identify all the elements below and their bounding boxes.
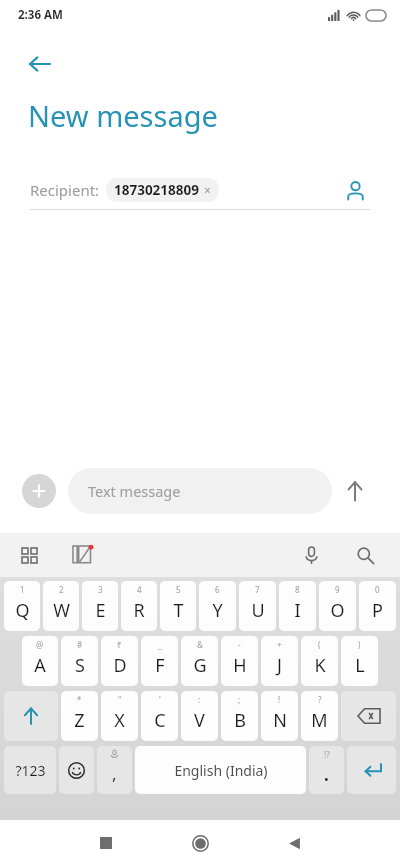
button[interactable]: Text message (68, 468, 332, 514)
button[interactable]: Backspace (341, 691, 396, 741)
button[interactable]: Emoji (59, 746, 94, 794)
button[interactable]: & (181, 636, 218, 686)
button[interactable]: 6 (199, 581, 236, 631)
button[interactable]: Enter (347, 746, 396, 794)
staticText: P (372, 598, 383, 623)
button[interactable]: ? (301, 691, 338, 741)
staticText: 5 (176, 584, 181, 595)
button[interactable]: !? (309, 746, 344, 794)
staticText: _ (158, 639, 162, 650)
button[interactable]: 18730218809 (106, 178, 219, 202)
staticText: 7 (255, 584, 260, 595)
other: Shift (22, 707, 40, 725)
staticText: 0 (375, 584, 380, 595)
button[interactable]: # (61, 636, 98, 686)
staticText: Q (15, 598, 30, 623)
staticText: W (53, 598, 70, 623)
button[interactable]: 7 (239, 581, 276, 631)
staticText: 4 (137, 584, 142, 595)
button[interactable]: " (101, 691, 138, 741)
staticText: 2 (59, 584, 64, 595)
staticText: C (154, 708, 166, 733)
staticText: New message (28, 96, 218, 135)
button[interactable]: Send (332, 468, 378, 514)
staticText: 1 (20, 584, 25, 595)
button[interactable]: Home (170, 820, 230, 866)
staticText: S (75, 653, 85, 678)
staticText: 18730218809 (114, 181, 199, 199)
staticText: D (113, 653, 127, 678)
staticText: ?123 (15, 761, 46, 780)
button[interactable]: ?123 (4, 746, 56, 794)
button[interactable]: Keyboard options (16, 542, 42, 568)
staticText: ( (318, 639, 321, 650)
button[interactable]: English (India) (135, 746, 306, 794)
button[interactable]: 8 (279, 581, 316, 631)
staticText: " (118, 694, 122, 705)
button[interactable]: 1 (4, 581, 40, 631)
staticText: , (112, 762, 117, 785)
button[interactable]: _ (141, 636, 178, 686)
button[interactable]: Stickers (68, 541, 96, 569)
staticText: M (311, 708, 328, 733)
button[interactable]: , (97, 746, 132, 794)
button[interactable]: @ (22, 636, 58, 686)
button[interactable]: ' (141, 691, 178, 741)
staticText: Z (74, 708, 85, 733)
staticText: J (277, 653, 282, 678)
staticText: T (173, 598, 184, 623)
staticText: 2:36 AM (18, 7, 63, 23)
staticText: ₹ (117, 639, 122, 650)
staticText: : (198, 694, 201, 705)
staticText: R (133, 598, 145, 623)
staticText: Y (212, 598, 223, 623)
staticText: . (324, 763, 329, 786)
staticText: ; (238, 694, 241, 705)
button[interactable]: 4 (121, 581, 157, 631)
other: Enter (362, 762, 382, 778)
other: Backspace (358, 708, 380, 724)
staticText: 8 (295, 584, 300, 595)
button[interactable]: Search (352, 542, 378, 568)
staticText: Recipient: (30, 180, 100, 200)
button[interactable]: * (61, 691, 98, 741)
staticText: B (234, 708, 246, 733)
button[interactable]: 9 (319, 581, 356, 631)
button[interactable]: ! (261, 691, 298, 741)
button[interactable]: Voice input (298, 542, 324, 568)
button[interactable]: ( (301, 636, 338, 686)
button[interactable]: ) (341, 636, 378, 686)
staticText: English (India) (174, 761, 268, 780)
other: Emoji (68, 762, 85, 779)
button[interactable]: : (181, 691, 218, 741)
staticText: L (355, 653, 365, 678)
button[interactable]: ₹ (101, 636, 138, 686)
button[interactable]: Recent apps (76, 820, 136, 866)
staticText: 3 (98, 584, 103, 595)
button[interactable]: Add attachment (22, 474, 56, 508)
staticText: 6 (215, 584, 220, 595)
staticText: U (251, 598, 265, 623)
staticText: ' (159, 694, 161, 705)
button[interactable]: Back (264, 820, 324, 866)
staticText: - (238, 639, 241, 650)
staticText: G (193, 653, 207, 678)
staticText: × (204, 182, 211, 198)
staticText: H (233, 653, 247, 678)
button[interactable]: Shift (4, 691, 58, 741)
button[interactable]: Contacts (340, 175, 370, 205)
button[interactable]: 3 (82, 581, 118, 631)
staticText: O (330, 598, 345, 623)
button[interactable]: 5 (160, 581, 196, 631)
button[interactable]: 2 (43, 581, 79, 631)
button[interactable]: - (221, 636, 258, 686)
button[interactable]: 0 (359, 581, 396, 631)
button[interactable]: ; (221, 691, 258, 741)
staticText: N (273, 708, 287, 733)
staticText: # (77, 639, 83, 650)
staticText: ! (278, 694, 281, 705)
button[interactable]: Back (22, 46, 58, 82)
staticText: * (77, 694, 82, 705)
button[interactable]: + (261, 636, 298, 686)
staticText: & (197, 639, 203, 650)
